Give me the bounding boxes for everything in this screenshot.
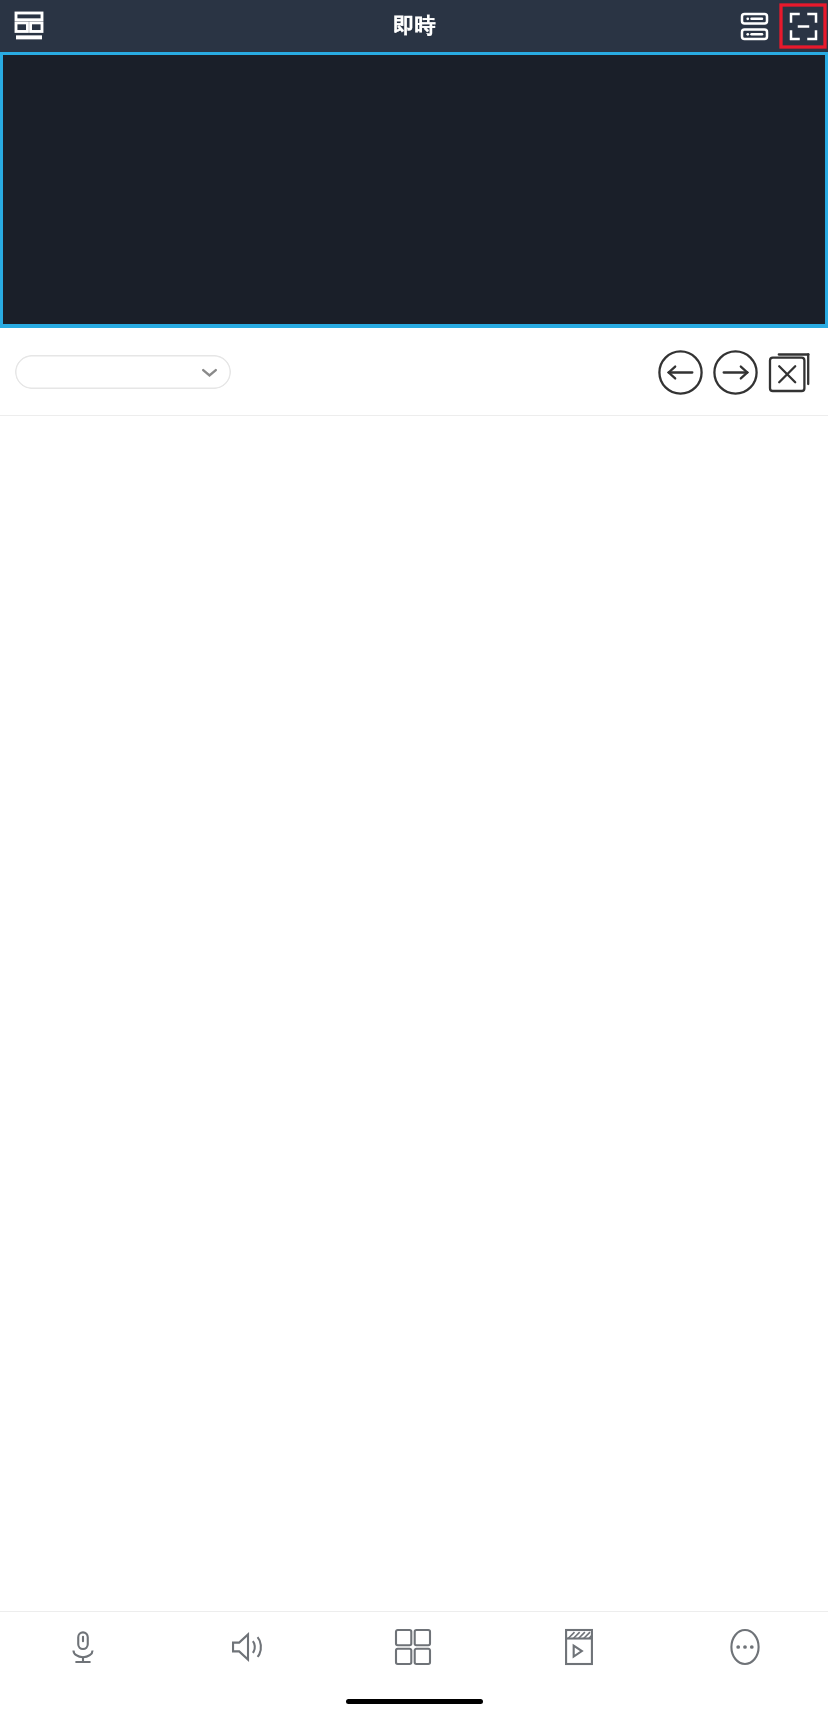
button[interactable]: Microphone [0, 1612, 165, 1681]
button[interactable]: Back [657, 349, 703, 395]
staticText: 即時 [393, 13, 435, 39]
button[interactable]: Clips [496, 1612, 662, 1681]
button[interactable] [15, 355, 231, 389]
button[interactable]: More [662, 1612, 828, 1681]
button[interactable]: Close [767, 349, 813, 395]
button[interactable]: Channel list [731, 3, 777, 49]
button[interactable]: Forward [712, 349, 758, 395]
button[interactable]: Grid [330, 1612, 496, 1681]
button[interactable]: Fullscreen [781, 5, 825, 47]
button[interactable]: Layout [7, 4, 51, 48]
button[interactable]: Volume [165, 1612, 330, 1681]
